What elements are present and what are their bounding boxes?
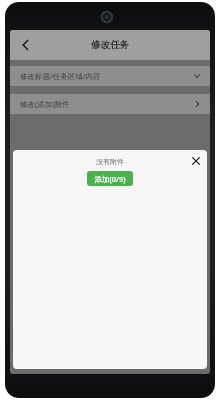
staticText: 添加(0/9) xyxy=(94,174,126,184)
button[interactable]: Close xyxy=(188,153,204,169)
staticText: 修改任务 xyxy=(91,39,129,51)
staticText: 没有附件 xyxy=(96,157,124,166)
staticText: 修改(添加)附件 xyxy=(20,99,70,109)
button[interactable]: 修改(添加)附件 xyxy=(10,94,210,114)
button[interactable]: 修改标题/任务区域/内容 xyxy=(10,66,210,86)
button[interactable]: 添加(0/9) xyxy=(87,171,133,186)
button[interactable]: Back xyxy=(10,31,38,59)
staticText: 修改标题/任务区域/内容 xyxy=(20,71,101,81)
